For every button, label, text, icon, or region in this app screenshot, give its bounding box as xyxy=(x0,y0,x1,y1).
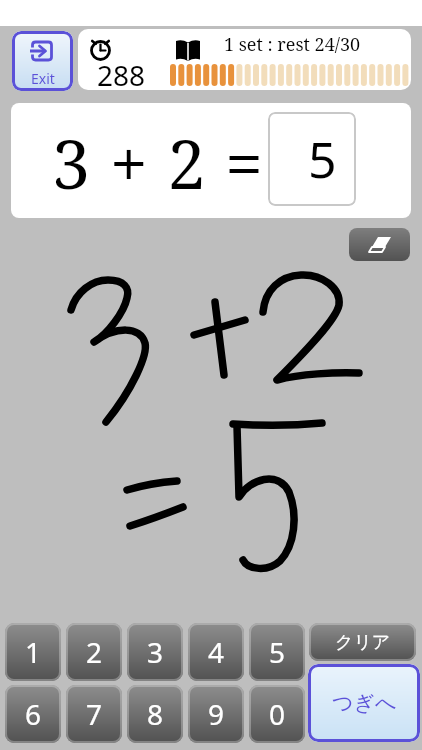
button[interactable]: つぎへ xyxy=(308,664,420,742)
button[interactable]: 2 xyxy=(66,623,122,681)
staticText: 2 xyxy=(86,633,103,671)
staticText: 0 xyxy=(269,695,286,733)
staticText: 1 xyxy=(25,633,42,671)
staticText: Exit xyxy=(31,69,55,88)
button[interactable]: 0 xyxy=(249,685,305,743)
button[interactable]: 5 xyxy=(249,623,305,681)
staticText: クリア xyxy=(335,631,391,654)
staticText: 5 xyxy=(308,125,337,193)
button[interactable] xyxy=(349,228,410,261)
button[interactable]: 8 xyxy=(127,685,183,743)
staticText: 3 + 2 = xyxy=(52,116,265,209)
staticText: 288 xyxy=(97,56,146,90)
button[interactable]: 3 xyxy=(127,623,183,681)
button[interactable]: 9 xyxy=(188,685,244,743)
staticText: 7 xyxy=(86,695,103,733)
button[interactable]: Exit xyxy=(12,31,73,91)
staticText: つぎへ xyxy=(332,690,397,716)
button[interactable]: 6 xyxy=(5,685,61,743)
button[interactable]: 7 xyxy=(66,685,122,743)
staticText: 3 xyxy=(147,633,164,671)
staticText: 6 xyxy=(25,695,42,733)
staticText: 1 set : rest 24/30 xyxy=(224,32,361,57)
staticText: 4 xyxy=(208,633,225,671)
staticText: 5 xyxy=(269,633,286,671)
button[interactable]: 1 xyxy=(5,623,61,681)
button[interactable]: 4 xyxy=(188,623,244,681)
staticText: 9 xyxy=(208,695,225,733)
button[interactable]: クリア xyxy=(309,623,416,661)
staticText: 8 xyxy=(147,695,164,733)
